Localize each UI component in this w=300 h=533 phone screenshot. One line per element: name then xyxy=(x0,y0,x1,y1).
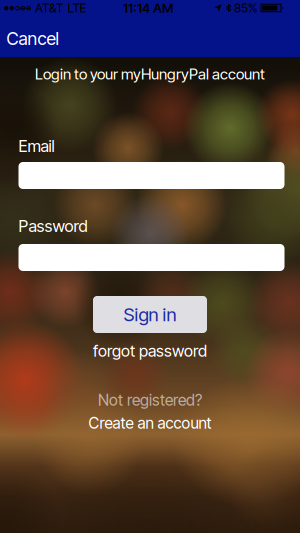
staticText: Password xyxy=(18,216,87,236)
staticText: Not registered? xyxy=(98,391,202,409)
staticText: Email xyxy=(18,136,54,156)
staticText: 85% xyxy=(234,0,258,15)
button[interactable]: Sign in xyxy=(93,296,207,333)
staticText: Login to your myHungryPal account xyxy=(35,65,265,83)
staticText: Cancel xyxy=(6,28,58,49)
staticText: LTE xyxy=(67,0,86,15)
staticText: AT&T xyxy=(35,0,63,15)
staticText: forgot password xyxy=(93,341,207,361)
staticText: Sign in xyxy=(123,303,176,326)
button[interactable]: Create an account xyxy=(88,414,211,432)
staticText: 11:14 AM xyxy=(123,0,173,16)
button[interactable]: forgot password xyxy=(93,341,207,361)
staticText: Create an account xyxy=(88,414,211,432)
button[interactable]: Cancel xyxy=(6,28,58,49)
